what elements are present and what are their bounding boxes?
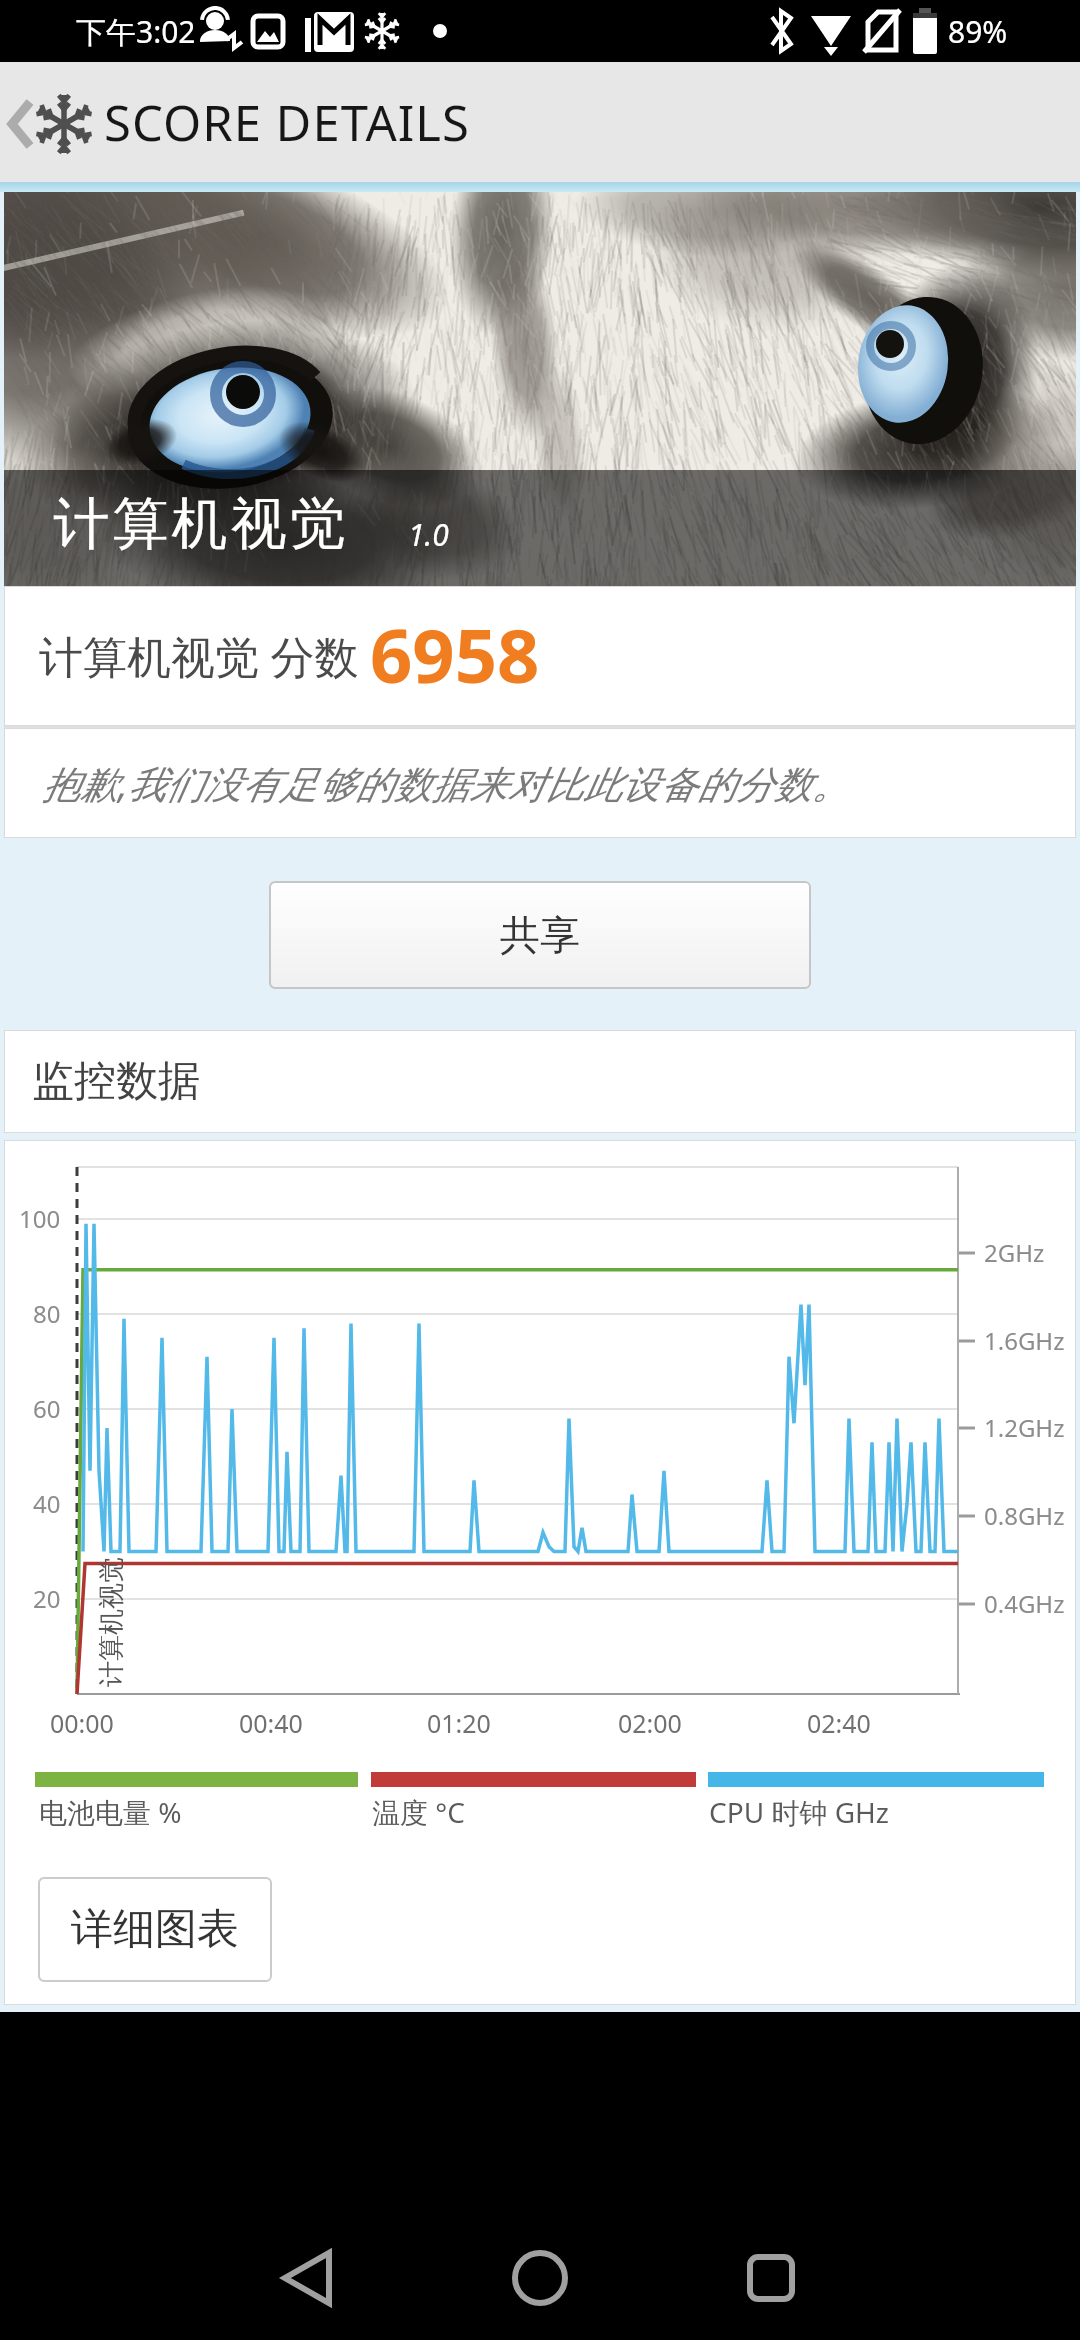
staticText: 100 (19, 1202, 61, 1235)
staticText: 监控数据 (32, 1055, 200, 1108)
button[interactable]: 详细图表 (38, 1877, 272, 1982)
staticText: 80 (33, 1297, 61, 1330)
staticText: CPU 时钟 GHz (709, 1793, 889, 1831)
staticText: 02:00 (618, 1706, 682, 1740)
staticText: 2GHz (984, 1236, 1045, 1269)
staticText: 共享 (500, 910, 580, 960)
staticText: 下午3:02 (76, 11, 196, 52)
staticText: 1.0 (408, 514, 449, 555)
staticText: 00:40 (239, 1706, 303, 1740)
button[interactable]: SCORE DETAILS (0, 62, 1080, 182)
staticText: 0.8GHz (984, 1499, 1065, 1532)
staticText: 电池电量 % (39, 1793, 182, 1831)
staticText: 02:40 (807, 1706, 871, 1740)
staticText: 20 (33, 1582, 61, 1615)
staticText: 计算机视觉 分数 (39, 626, 359, 686)
staticText: 40 (33, 1487, 61, 1520)
staticText: 6958 (370, 604, 540, 705)
staticText: SCORE DETAILS (104, 89, 470, 156)
staticText: 1.2GHz (984, 1411, 1065, 1444)
button[interactable]: 共享 (269, 881, 811, 989)
staticText: 1.6GHz (984, 1324, 1065, 1357)
staticText: 详细图表 (71, 1903, 239, 1956)
staticText: 01:20 (427, 1706, 491, 1740)
staticText: 温度 °C (372, 1793, 465, 1831)
staticText: 89% (948, 11, 1008, 52)
staticText: 计算机视觉 (52, 489, 347, 560)
staticText: 计算机视觉 (95, 1557, 128, 1687)
staticText: 抱歉,我们没有足够的数据来对比此设备的分数。 (42, 757, 850, 809)
staticText: 60 (33, 1392, 61, 1425)
staticText: 00:00 (50, 1706, 114, 1740)
staticText: 0.4GHz (984, 1587, 1065, 1620)
